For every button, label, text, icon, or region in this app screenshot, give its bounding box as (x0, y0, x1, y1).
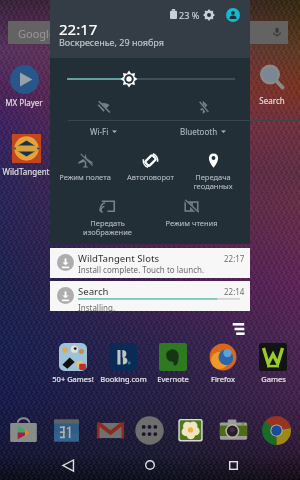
staticText: Режим чтения (165, 218, 218, 228)
button[interactable]: 50+ Games! (48, 343, 98, 384)
button[interactable]: Booking.com (98, 343, 148, 384)
staticText: Install complete. Touch to launch. (78, 264, 205, 275)
staticText: Booking.com (100, 374, 147, 384)
staticText: Games (261, 374, 286, 384)
staticText: Search (78, 285, 109, 298)
button[interactable]: Evernote (148, 343, 198, 384)
button[interactable]: Chrome (259, 413, 293, 447)
button[interactable]: Gallery (173, 413, 207, 447)
button[interactable]: Clear all notifications (228, 318, 250, 340)
button[interactable]: Firefox (198, 343, 248, 384)
button[interactable]: Режим чтения (163, 196, 219, 228)
staticText: Bluetooth (180, 126, 218, 137)
button[interactable]: Back (53, 450, 83, 480)
button[interactable]: WildTangent Slots (50, 248, 250, 278)
staticText: Installing. (78, 302, 116, 313)
button[interactable]: MX Player (0, 65, 48, 108)
button[interactable]: Search (50, 281, 250, 311)
staticText: 50+ Games! (52, 374, 94, 384)
staticText: Передача геоданных (193, 172, 233, 191)
staticText: 22:14 (224, 286, 245, 297)
staticText: Wi-Fi (90, 126, 109, 137)
button[interactable]: WildTangent… (2, 134, 50, 177)
button[interactable]: Передача геоданных (185, 150, 241, 191)
staticText: Firefox (211, 374, 235, 384)
button[interactable]: Gmail (93, 413, 127, 447)
staticText: Google (18, 26, 56, 41)
button[interactable]: Bluetooth (158, 99, 248, 141)
button[interactable]: Search (248, 63, 296, 106)
button[interactable]: Play Store (6, 413, 40, 447)
button[interactable]: Wi-Fi (58, 99, 148, 141)
staticText: Search (259, 95, 285, 106)
staticText: WildTangent… (2, 166, 50, 177)
staticText: Воскресенье, 29 ноября (59, 36, 164, 48)
button[interactable]: Передать изображение (79, 196, 135, 237)
button[interactable]: Calendar (49, 413, 83, 447)
staticText: 22:17 (59, 19, 98, 39)
staticText: Автоповорот (127, 172, 174, 182)
button[interactable]: Режим полета (57, 150, 113, 182)
staticText: Передать изображение (83, 218, 132, 237)
button[interactable]: Games (248, 343, 298, 384)
staticText: 23 % (179, 9, 200, 21)
button[interactable]: All apps (132, 413, 166, 447)
staticText: WildTangent Slots (78, 252, 160, 265)
button[interactable]: Google (8, 21, 288, 44)
staticText: Режим полета (59, 172, 111, 182)
staticText: Evernote (157, 374, 189, 384)
staticText: MX Player (5, 97, 43, 108)
staticText: 22:17 (224, 253, 245, 264)
button[interactable]: Home (135, 450, 165, 480)
other: Voice search (271, 26, 283, 38)
button[interactable]: Settings (200, 6, 218, 24)
button[interactable]: Автоповорот (122, 150, 178, 182)
button[interactable]: Camera (216, 413, 250, 447)
button[interactable]: User profile (223, 5, 242, 24)
button[interactable]: Recents (218, 450, 248, 480)
